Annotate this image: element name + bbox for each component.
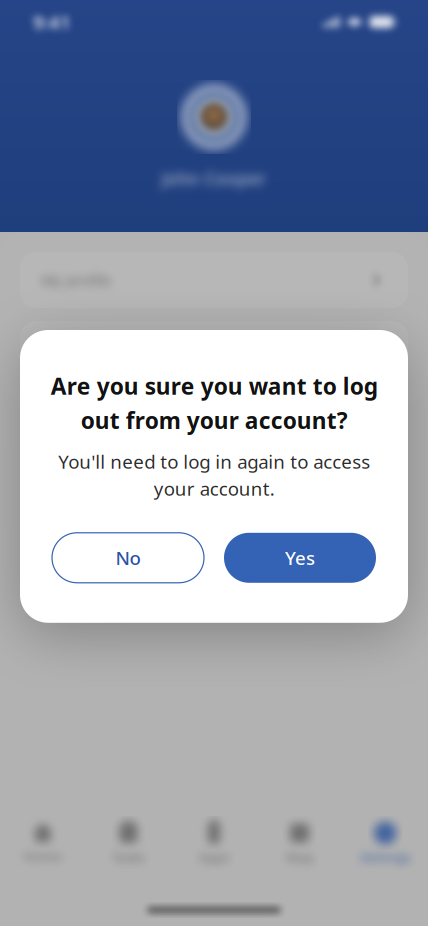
button[interactable]: Yes xyxy=(224,533,376,583)
button[interactable]: My profile xyxy=(20,252,408,308)
staticText: John Cooper xyxy=(161,167,266,190)
button[interactable]: Apps xyxy=(171,816,257,874)
staticText: Yes xyxy=(285,545,315,570)
staticText: Home xyxy=(23,847,62,865)
staticText: Tasks xyxy=(112,848,145,866)
button[interactable]: No xyxy=(52,533,204,583)
staticText: Map xyxy=(286,848,314,866)
staticText: My profile xyxy=(41,270,111,290)
staticText: Apps xyxy=(198,848,229,866)
button[interactable]: Tasks xyxy=(86,816,171,874)
staticText: Settings xyxy=(360,848,411,866)
button[interactable]: Home xyxy=(0,816,86,874)
button[interactable]: Settings xyxy=(342,816,428,874)
staticText: You'll need to log in again to access yo… xyxy=(58,449,370,501)
staticText: 9:41 xyxy=(33,10,71,34)
staticText: Are you sure you want to log out from yo… xyxy=(50,371,377,435)
staticText: No xyxy=(115,545,140,570)
button[interactable]: Notifications xyxy=(20,321,408,377)
button[interactable]: Map xyxy=(257,816,342,874)
